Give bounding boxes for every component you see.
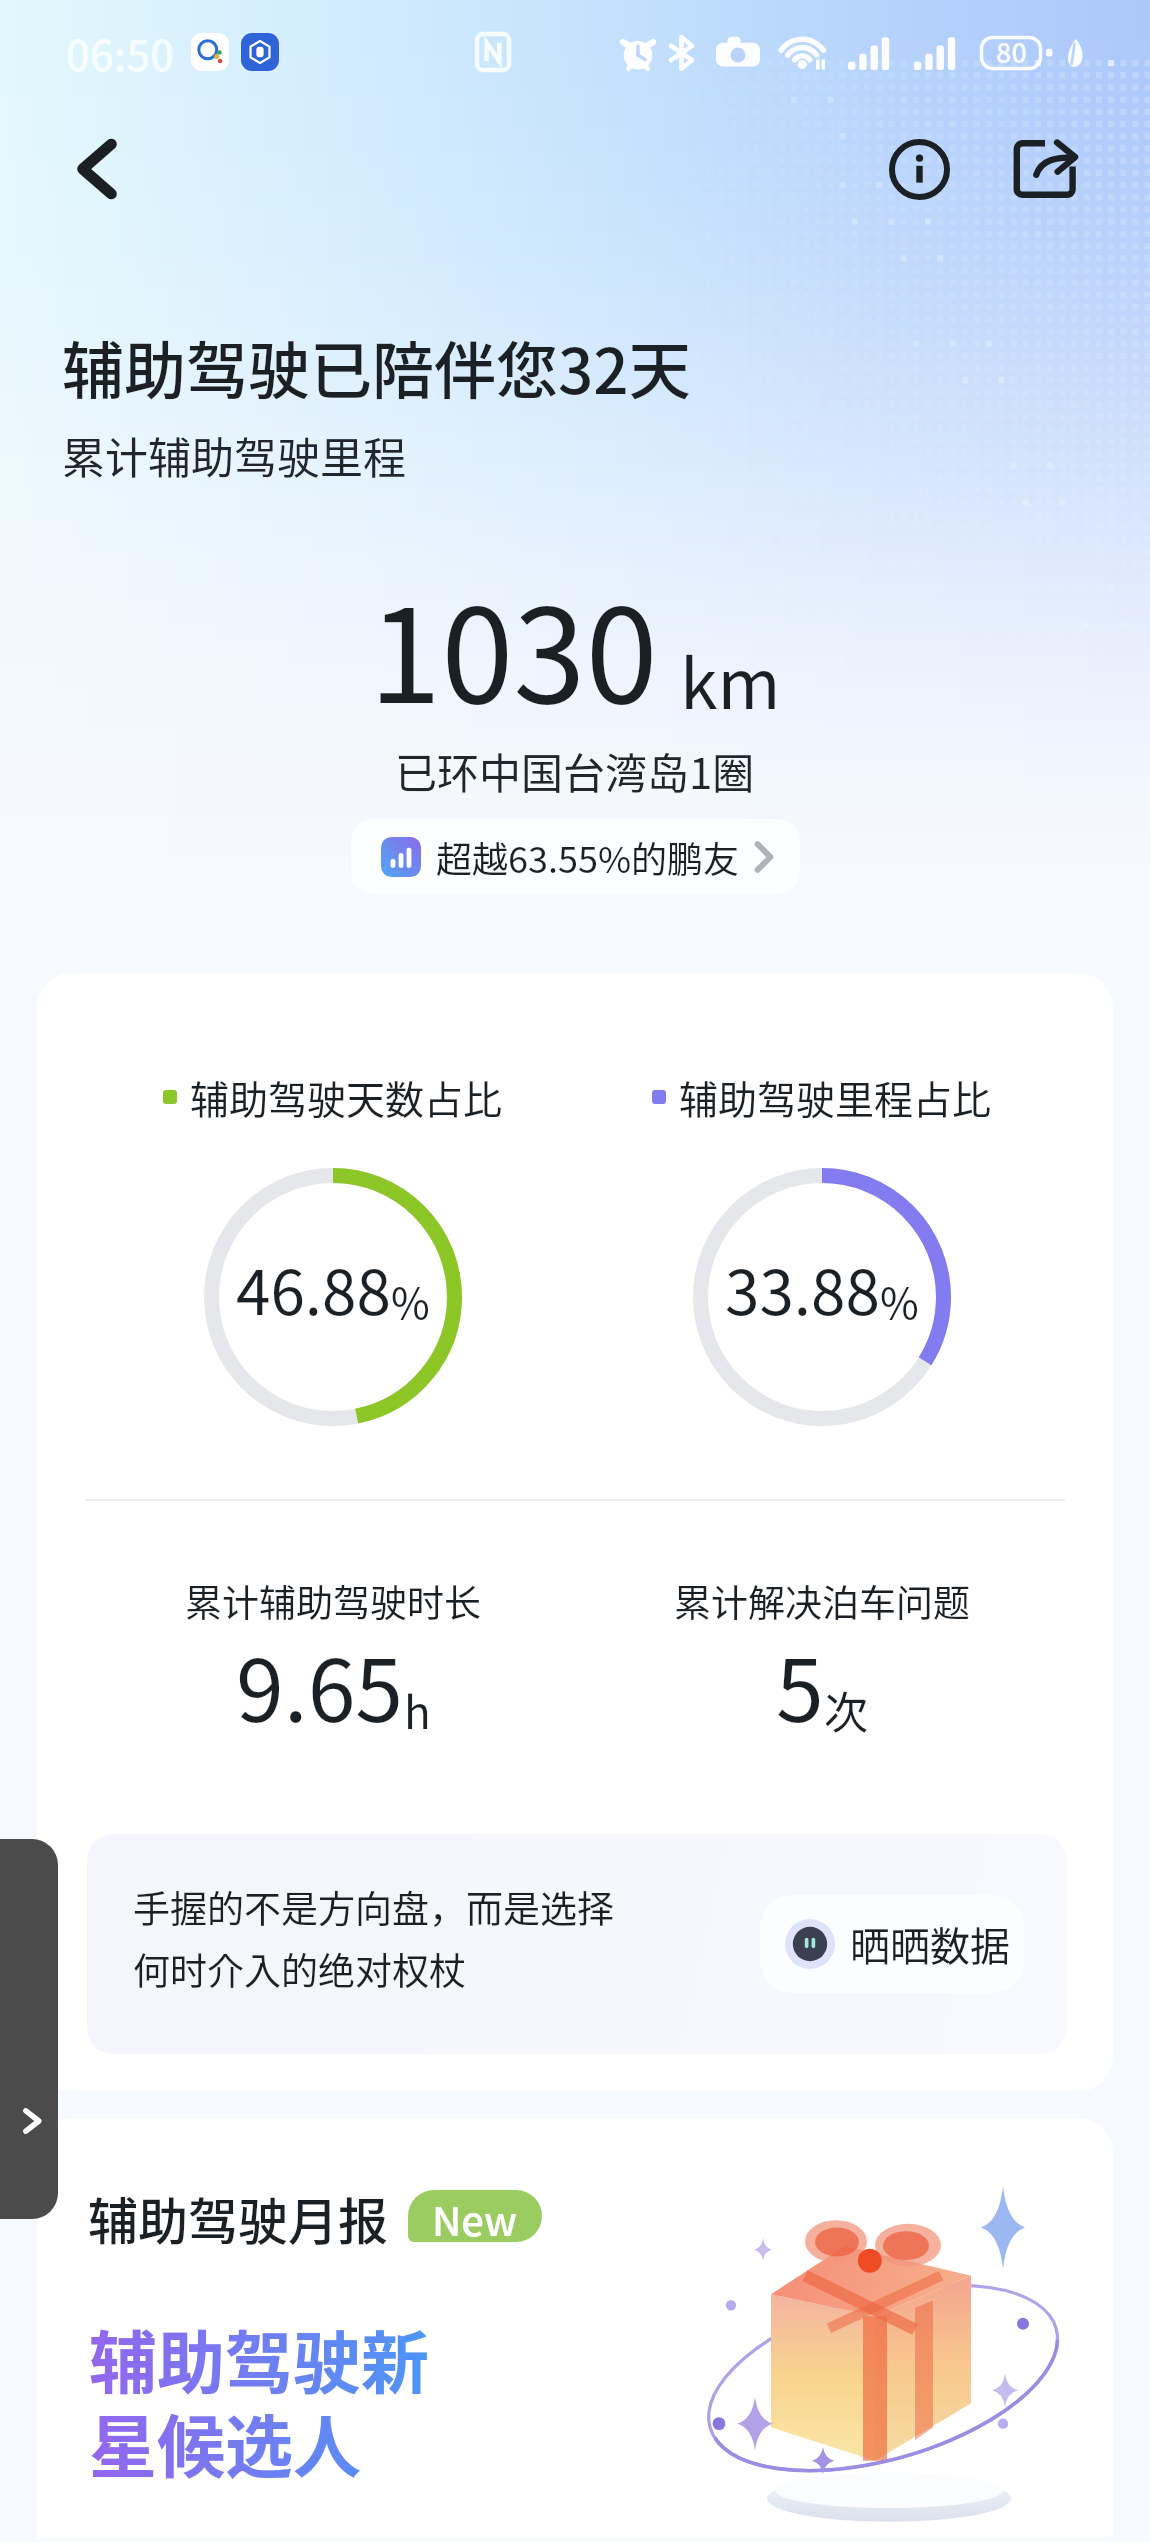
staticText: 已环中国台湾岛1圈 [395, 740, 755, 801]
staticText: 辅助驾驶新 [89, 2309, 430, 2407]
button[interactable]: 晒晒数据 [760, 1895, 1024, 1993]
staticText: 80 [996, 32, 1027, 71]
staticText: 次 [824, 1678, 868, 1742]
staticText: 06:50 [66, 22, 175, 83]
staticText: 何时介入的绝对权杖 [133, 1942, 466, 1996]
staticText: 累计解决泊车问题 [674, 1574, 970, 1628]
staticText: h [404, 1678, 431, 1742]
staticText: 1030 [369, 552, 658, 740]
button[interactable]: Info [880, 130, 958, 208]
staticText: 晒晒数据 [850, 1915, 1010, 1973]
staticText: 5 [776, 1622, 824, 1747]
staticText: New [432, 2190, 518, 2242]
staticText: 46.88 [236, 1243, 391, 1333]
staticText: 9.65 [236, 1622, 404, 1747]
staticText: 辅助驾驶已陪伴您32天 [62, 322, 691, 412]
staticText: 33.88 [725, 1243, 880, 1333]
staticText: 累计辅助驾驶里程 [62, 424, 406, 486]
button[interactable]: Share [1006, 130, 1084, 208]
staticText: % [880, 1270, 919, 1331]
staticText: 累计辅助驾驶时长 [185, 1574, 481, 1628]
staticText: 辅助驾驶月报 [88, 2182, 388, 2254]
staticText: 辅助驾驶天数占比 [190, 1069, 503, 1125]
staticText: % [391, 1270, 430, 1331]
staticText: 超越63.55%的鹏友 [436, 831, 740, 883]
button[interactable]: 超越63.55%的鹏友 [351, 819, 800, 894]
button[interactable]: 辅助驾驶月报 [37, 2118, 1113, 2538]
staticText: km [680, 630, 781, 728]
staticText: 手握的不是方向盘，而是选择 [133, 1880, 614, 1934]
button[interactable]: Back [62, 134, 132, 204]
button[interactable]: Open side panel [0, 1839, 58, 2219]
staticText: 辅助驾驶里程占比 [679, 1069, 992, 1125]
staticText: 星候选人 [89, 2393, 362, 2491]
